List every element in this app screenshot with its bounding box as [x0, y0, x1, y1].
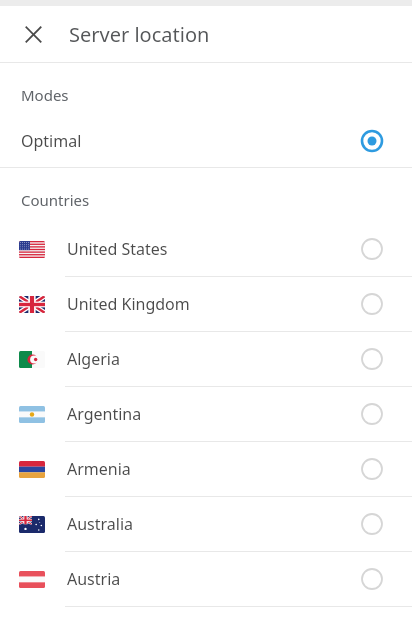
staticText: Server location — [69, 21, 210, 48]
staticText: Armenia — [67, 458, 131, 480]
staticText: Modes — [21, 85, 69, 105]
button[interactable]: Algeria — [0, 332, 412, 386]
button[interactable]: Argentina — [0, 387, 412, 441]
staticText: Australia — [67, 513, 134, 535]
button[interactable]: United Kingdom — [0, 277, 412, 331]
button[interactable]: Close — [13, 14, 53, 54]
staticText: United Kingdom — [67, 293, 190, 315]
staticText: Optimal — [21, 130, 82, 152]
staticText: Algeria — [67, 348, 120, 370]
staticText: Countries — [21, 190, 90, 210]
staticText: United States — [67, 238, 168, 260]
button[interactable]: United States — [0, 222, 412, 276]
button[interactable]: Australia — [0, 497, 412, 551]
staticText: Argentina — [67, 403, 142, 425]
button[interactable]: Armenia — [0, 442, 412, 496]
button[interactable]: Austria — [0, 552, 412, 606]
button[interactable]: Optimal — [0, 115, 412, 167]
staticText: Austria — [67, 568, 121, 590]
